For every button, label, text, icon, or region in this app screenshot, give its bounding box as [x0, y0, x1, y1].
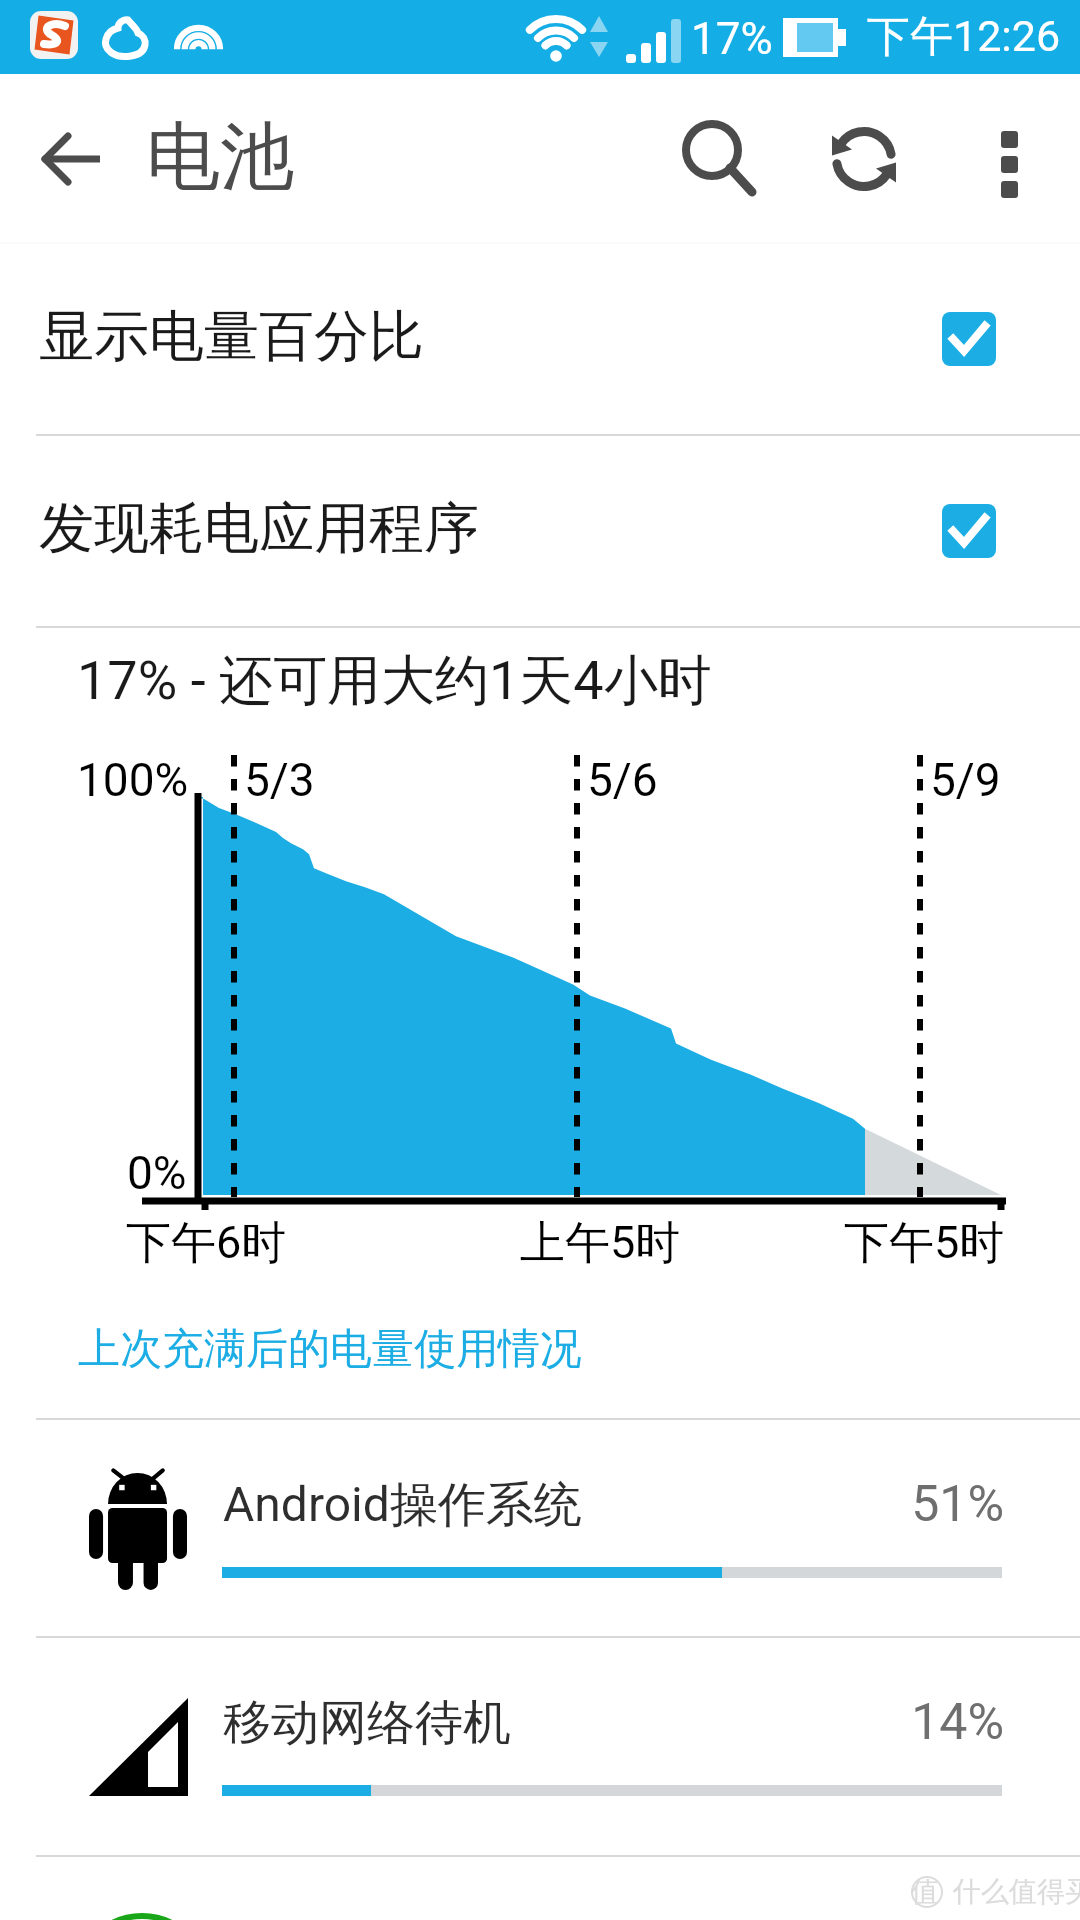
staticText: 显示电量百分比 — [39, 302, 424, 371]
staticText: 上次充满后的电量使用情况 — [78, 1323, 582, 1376]
button[interactable]: Refresh — [804, 74, 924, 243]
button[interactable]: 移动网络待机 — [0, 1638, 1080, 1854]
button[interactable]: Back — [12, 74, 132, 243]
button[interactable]: 上次充满后的电量使用情况 — [78, 1323, 582, 1376]
staticText: Android操作系统 — [223, 1475, 582, 1535]
button[interactable]: Android操作系统 — [0, 1420, 1080, 1636]
staticText: 下午5时 — [844, 1215, 1005, 1272]
staticText: 下午6时 — [126, 1215, 287, 1272]
staticText: 5/6 — [587, 753, 658, 807]
staticText: 移动网络待机 — [223, 1693, 511, 1753]
button[interactable]: 发现耗电应用程序 — [0, 435, 1080, 627]
staticText: 电池 — [146, 111, 294, 204]
staticText: 下午12:26 — [867, 10, 1061, 64]
staticText: 5/9 — [930, 753, 1001, 807]
staticText: 上午5时 — [520, 1215, 681, 1272]
staticText: 5/3 — [244, 753, 315, 807]
staticText: 100% — [77, 753, 189, 807]
staticText: 14% — [700, 1693, 1004, 1752]
staticText: 发现耗电应用程序 — [39, 494, 479, 563]
staticText: 17% — [691, 13, 773, 65]
staticText: 51% — [700, 1475, 1004, 1534]
button[interactable]: Search — [660, 74, 780, 243]
staticText: 17% - 还可用大约1天4小时 — [77, 647, 712, 715]
button[interactable]: More options — [954, 74, 1064, 243]
button[interactable]: 显示电量百分比 — [0, 243, 1080, 435]
staticText: 0% — [127, 1146, 187, 1200]
staticText: 值 什么值得买 — [911, 1874, 1080, 1909]
